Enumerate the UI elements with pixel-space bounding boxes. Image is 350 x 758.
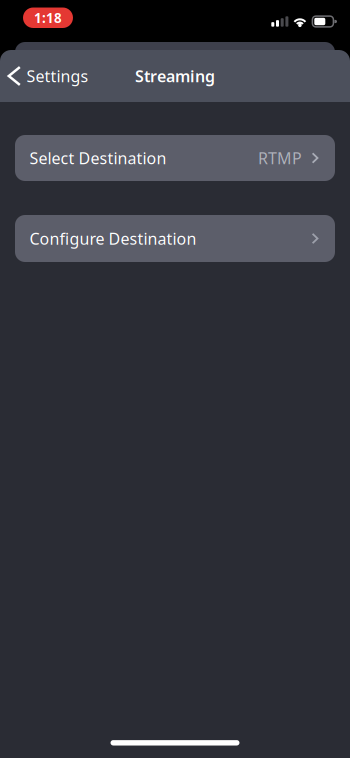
staticText: RTMP xyxy=(258,147,302,169)
staticText: Configure Destination xyxy=(29,228,196,249)
button[interactable]: Configure Destination xyxy=(15,215,335,262)
staticText: Streaming xyxy=(135,65,215,87)
staticText: Settings xyxy=(27,65,89,87)
button[interactable]: Select Destination xyxy=(15,135,335,181)
staticText: 1:18 xyxy=(34,9,62,27)
staticText: Select Destination xyxy=(29,147,166,169)
button[interactable]: Settings xyxy=(0,54,99,98)
